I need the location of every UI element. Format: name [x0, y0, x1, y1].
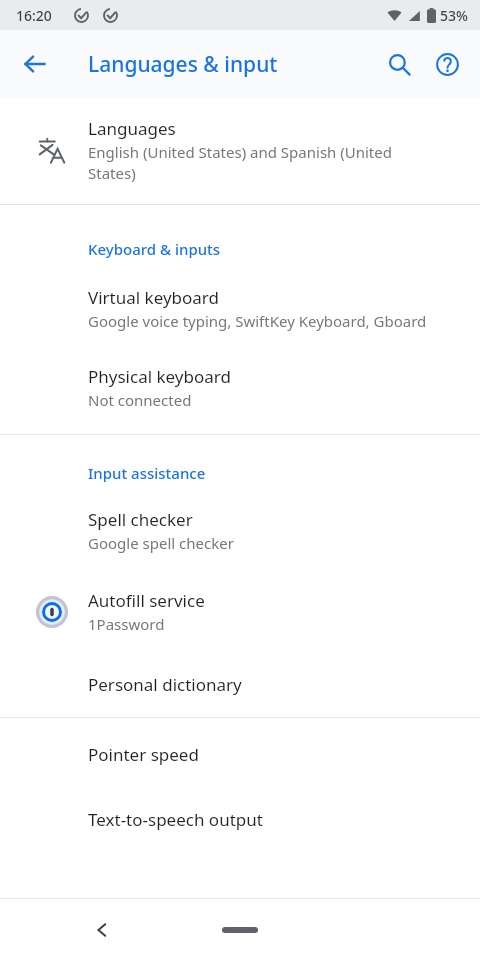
- staticText: Google spell checker: [88, 533, 234, 553]
- button[interactable]: Home: [210, 915, 270, 945]
- staticText: English (United States) and Spanish (Uni…: [88, 142, 392, 184]
- staticText: Not connected: [88, 390, 192, 410]
- button[interactable]: Physical keyboard: [0, 355, 480, 434]
- staticText: Pointer speed: [88, 743, 199, 766]
- button[interactable]: Help: [423, 40, 471, 88]
- button[interactable]: Languages: [0, 98, 480, 204]
- button[interactable]: Virtual keyboard: [0, 273, 480, 355]
- staticText: Languages & input: [88, 50, 278, 79]
- button[interactable]: Back: [11, 40, 59, 88]
- staticText: Personal dictionary: [88, 673, 242, 696]
- button[interactable]: Text-to-speech output: [0, 789, 480, 859]
- button[interactable]: Autofill service: [0, 579, 480, 660]
- staticText: 16:20: [16, 6, 52, 25]
- staticText: Autofill service: [88, 589, 205, 612]
- button[interactable]: Search: [375, 40, 423, 88]
- staticText: Languages: [88, 117, 176, 140]
- button[interactable]: Spell checker: [0, 496, 480, 579]
- button[interactable]: Pointer speed: [0, 718, 480, 789]
- staticText: Virtual keyboard: [88, 286, 220, 309]
- staticText: 53%: [440, 6, 468, 25]
- staticText: Text-to-speech output: [88, 808, 263, 831]
- staticText: Keyboard & inputs: [88, 239, 221, 259]
- button[interactable]: Back: [80, 908, 124, 952]
- staticText: Physical keyboard: [88, 365, 231, 388]
- staticText: 1Password: [88, 614, 165, 634]
- button[interactable]: Personal dictionary: [0, 660, 480, 717]
- staticText: Google voice typing, SwiftKey Keyboard, …: [88, 311, 427, 331]
- staticText: Input assistance: [88, 463, 206, 483]
- staticText: Spell checker: [88, 508, 193, 531]
